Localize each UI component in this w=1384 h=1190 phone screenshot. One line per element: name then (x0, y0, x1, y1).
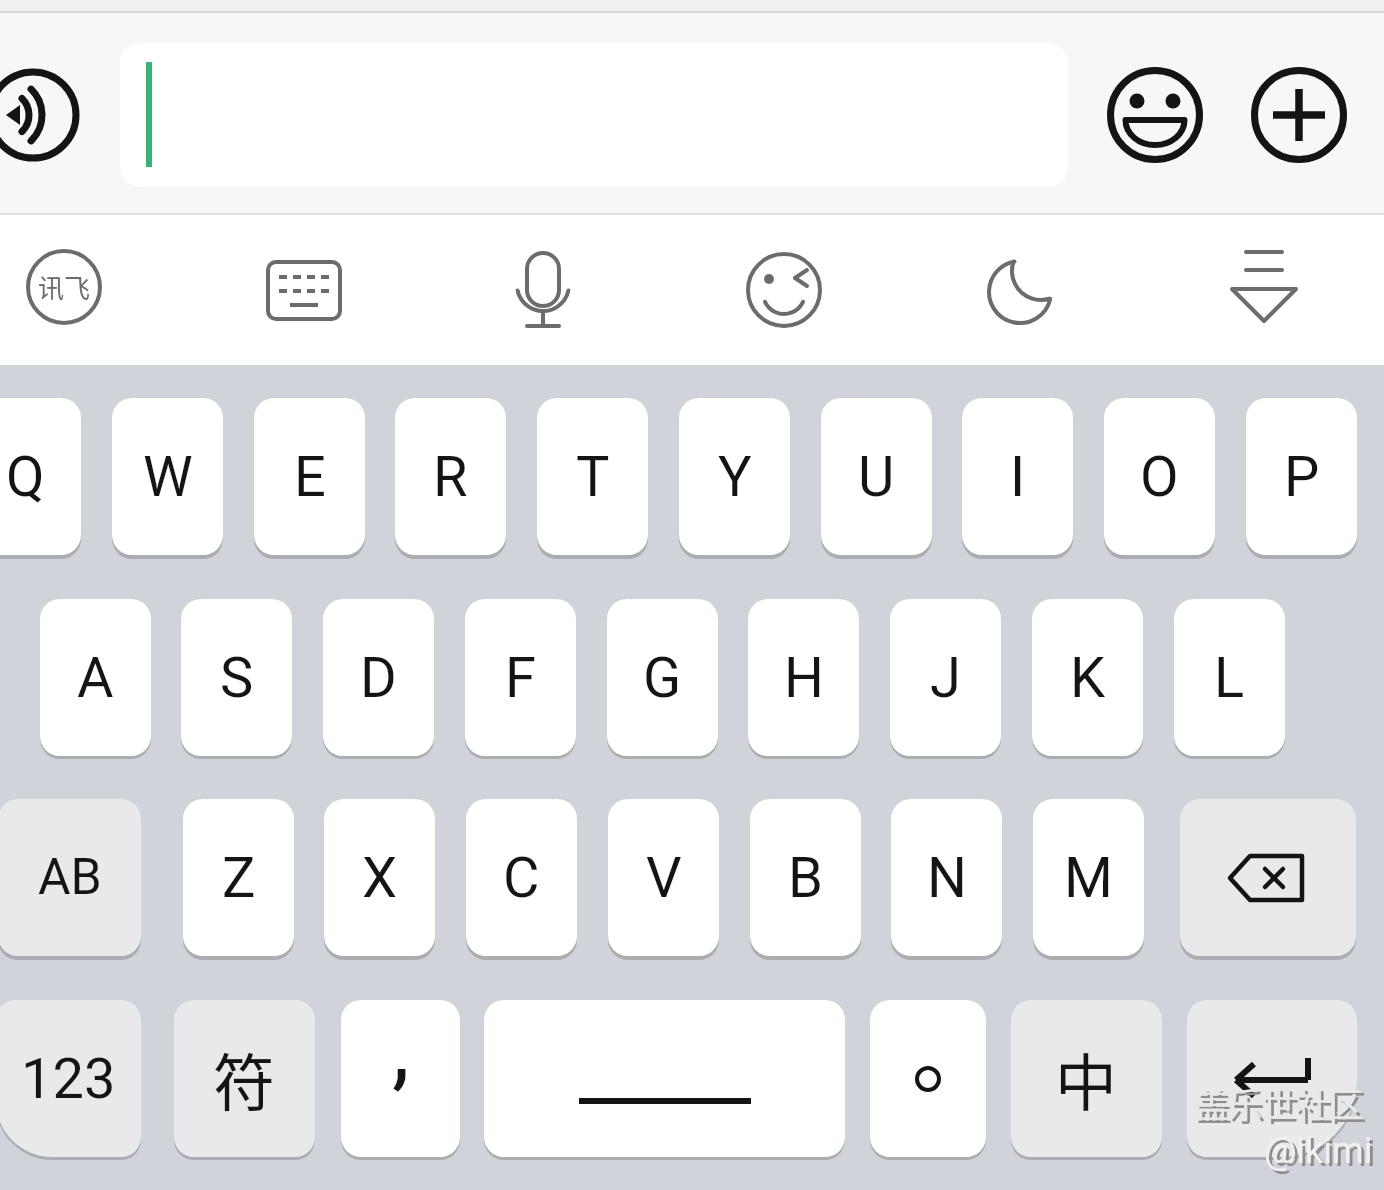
button[interactable]: Z (183, 799, 294, 956)
staticText: K (1070, 645, 1106, 711)
staticText: @ikimi (1264, 1130, 1373, 1172)
button[interactable]: E (254, 398, 365, 555)
staticText: B (788, 845, 823, 911)
button[interactable]: A (40, 599, 151, 756)
button[interactable]: M (1033, 799, 1144, 956)
staticText: 中 (1055, 1034, 1118, 1124)
button[interactable]: P (1246, 398, 1357, 555)
button[interactable] (1251, 67, 1347, 163)
staticText: J (930, 645, 961, 711)
button[interactable]: Q (0, 398, 81, 555)
staticText: L (1214, 645, 1245, 711)
staticText: U (858, 444, 895, 510)
button[interactable]: R (395, 398, 506, 555)
button[interactable]: B (750, 799, 861, 956)
button[interactable]: C (466, 799, 577, 956)
staticText: E (294, 444, 326, 510)
staticText: R (433, 444, 468, 510)
staticText: C (503, 845, 540, 911)
button[interactable]: Y (679, 398, 790, 555)
button[interactable]: O (1104, 398, 1215, 555)
button[interactable]: T (537, 398, 648, 555)
staticText: @ikimi (1267, 1133, 1376, 1175)
button[interactable]: X (324, 799, 435, 956)
button[interactable]: 符 (174, 1000, 315, 1157)
button[interactable] (744, 250, 824, 330)
staticText: F (505, 645, 536, 711)
button[interactable] (1107, 67, 1203, 163)
staticText: 符 (213, 1034, 276, 1124)
staticText: A (77, 645, 114, 711)
staticText: N (927, 845, 967, 911)
staticText: H (784, 645, 824, 711)
button[interactable] (120, 43, 1068, 187)
button[interactable]: D (323, 599, 434, 756)
button[interactable]: W (112, 398, 223, 555)
button[interactable] (0, 68, 80, 162)
button[interactable]: L (1174, 599, 1285, 756)
button[interactable] (503, 245, 583, 335)
button[interactable]: S (181, 599, 292, 756)
button[interactable]: J (890, 599, 1001, 756)
button[interactable]: K (1032, 599, 1143, 756)
button[interactable]: V (608, 799, 719, 956)
staticText: 讯飞 (38, 268, 91, 306)
staticText: , (392, 996, 410, 1101)
button[interactable] (1187, 1000, 1357, 1157)
staticText: AB (38, 848, 102, 907)
staticText: 盖乐世社区 (1194, 1077, 1363, 1128)
button[interactable] (484, 1000, 845, 1157)
button[interactable] (870, 1000, 986, 1157)
button[interactable]: 讯飞 (24, 247, 104, 327)
staticText: S (220, 645, 254, 711)
staticText: 123 (21, 1046, 116, 1112)
button[interactable]: I (962, 398, 1073, 555)
button[interactable]: F (465, 599, 576, 756)
button[interactable]: , (341, 1000, 460, 1157)
staticText: O (1140, 444, 1179, 510)
button[interactable]: G (607, 599, 718, 756)
button[interactable] (264, 250, 344, 330)
staticText: Z (222, 845, 256, 911)
staticText: T (576, 444, 610, 510)
staticText: Y (718, 444, 752, 510)
button[interactable] (980, 250, 1060, 330)
button[interactable] (1180, 799, 1356, 956)
staticText: Q (6, 444, 45, 510)
button[interactable]: 123 (0, 1000, 141, 1157)
button[interactable]: AB (0, 799, 141, 956)
staticText: D (360, 645, 397, 711)
button[interactable]: N (891, 799, 1002, 956)
button[interactable]: U (821, 398, 932, 555)
button[interactable]: H (748, 599, 859, 756)
staticText: M (1064, 845, 1113, 911)
staticText: I (1010, 444, 1026, 510)
staticText: V (646, 845, 682, 911)
button[interactable]: 中 (1011, 1000, 1162, 1157)
staticText: 盖乐世社区 (1197, 1080, 1366, 1131)
staticText: X (362, 845, 398, 911)
staticText: W (143, 444, 193, 510)
staticText: G (643, 645, 682, 711)
button[interactable] (1224, 242, 1304, 332)
staticText: P (1284, 444, 1320, 510)
